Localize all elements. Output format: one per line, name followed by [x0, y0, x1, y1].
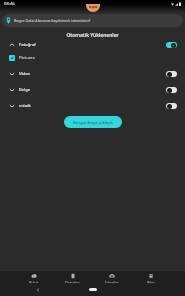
staticText: Başpo Dolat Alanınıza kaydetmek istemisi… — [14, 18, 91, 23]
button[interactable]: Bilgi — [131, 271, 170, 283]
button[interactable]: müzik — [0, 98, 185, 114]
staticText: Bulut — [29, 280, 39, 283]
staticText: 08:46 — [4, 1, 15, 7]
staticText: Video — [19, 71, 31, 77]
staticText: Pictures — [19, 55, 35, 61]
staticText: müzik — [19, 103, 31, 109]
staticText: Belge — [19, 87, 31, 93]
staticText: İşlemler — [105, 280, 119, 283]
button[interactable]: Kapalı — [166, 103, 177, 109]
button[interactable]: Kapalı — [166, 87, 177, 93]
staticText: Dosyalar — [65, 280, 80, 283]
staticText: Fotoğraf — [19, 42, 36, 48]
button[interactable]: Bulut — [15, 271, 53, 283]
button[interactable]: Geri — [34, 286, 42, 294]
button[interactable]: Ana ekran — [89, 288, 97, 291]
button[interactable]: Karşıya dosya yükleyin — [64, 116, 122, 128]
button[interactable]: İşlemler — [92, 271, 131, 283]
staticText: Karşıya dosya yükleyin — [73, 120, 114, 125]
button[interactable]: Belge — [0, 82, 185, 98]
button[interactable]: Dosyalar — [53, 271, 92, 283]
button[interactable]: Kapalı — [166, 71, 177, 77]
staticText: Otomatik Yüklenenler — [0, 32, 185, 39]
button[interactable]: Video — [0, 66, 185, 82]
button[interactable]: Başpo Dolat Alanınıza kaydetmek istemisi… — [2, 14, 183, 27]
staticText: Bilgi — [147, 280, 155, 283]
button[interactable]: Pictures — [0, 50, 185, 66]
button[interactable]: Açık — [166, 42, 177, 48]
button[interactable]: Fotoğraf — [0, 39, 185, 50]
